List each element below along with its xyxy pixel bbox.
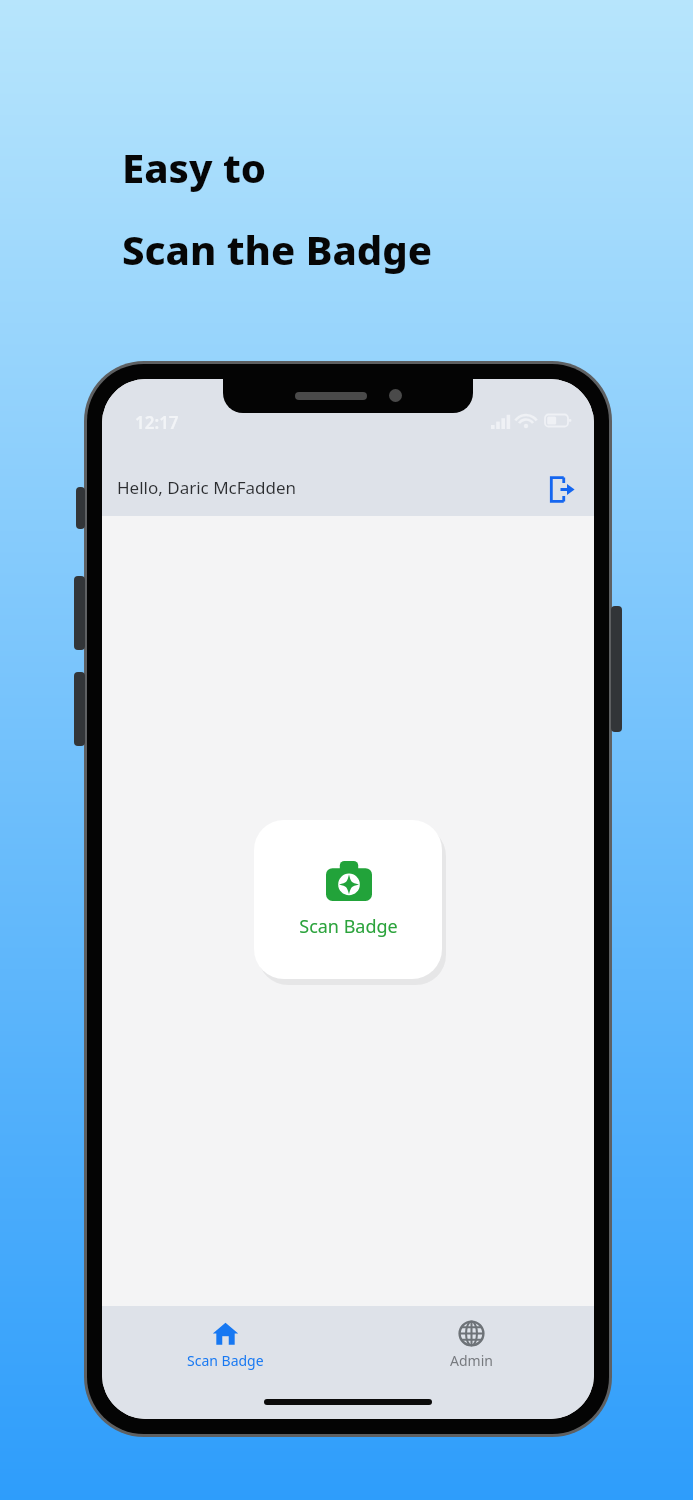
staticText: 12:17 xyxy=(135,411,179,434)
staticText: Hello, Daric McFadden xyxy=(117,476,297,499)
staticText: Easy to xyxy=(122,140,266,194)
button[interactable]: Admin xyxy=(348,1306,594,1370)
button[interactable]: Scan Badge xyxy=(254,820,442,979)
button[interactable]: Scan Badge xyxy=(102,1306,348,1370)
staticText: Scan the Badge xyxy=(122,222,433,276)
staticText: Admin xyxy=(450,1351,493,1370)
staticText: Scan Badge xyxy=(299,914,398,939)
staticText: Scan Badge xyxy=(187,1351,264,1370)
button[interactable]: Logout xyxy=(538,467,582,511)
